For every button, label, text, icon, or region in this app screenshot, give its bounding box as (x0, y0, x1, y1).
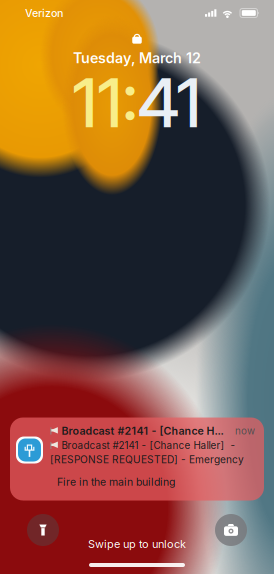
staticText: Fire in the main building (57, 476, 175, 488)
staticText: [RESPONSE REQUESTED] - Emergency (50, 453, 244, 466)
staticText: 41 (137, 63, 201, 143)
staticText: Tuesday, March 12 (73, 49, 201, 67)
staticText: 11: (72, 63, 137, 143)
staticText: now (235, 425, 255, 437)
button[interactable]: Flashlight (27, 514, 59, 546)
button[interactable]: Broadcast #2141 - [Chance H... (10, 417, 264, 500)
staticText: Broadcast #2141 - [Chance H... (61, 424, 223, 437)
button[interactable]: Camera (215, 514, 247, 546)
staticText: Broadcast #2141 - [Chance Haller] - (61, 439, 235, 451)
staticText: Swipe up to unlock (88, 537, 186, 551)
staticText: Verizon (25, 6, 63, 19)
